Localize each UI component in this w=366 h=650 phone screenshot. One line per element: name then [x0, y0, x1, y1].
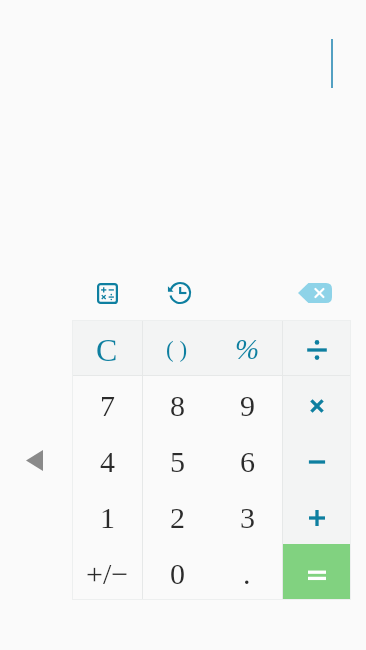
button[interactable]: 9	[212, 376, 282, 432]
staticText: .	[243, 557, 251, 590]
button[interactable]: 8	[142, 376, 212, 432]
button[interactable]: Operations	[72, 272, 142, 314]
button[interactable]: 2	[142, 488, 212, 544]
button[interactable]: Collapse keypad	[18, 442, 50, 478]
staticText: %	[235, 333, 260, 365]
staticText: 8	[170, 389, 185, 422]
staticText: ( )	[166, 337, 188, 362]
button[interactable]: C	[72, 320, 142, 376]
staticText: 2	[170, 501, 185, 534]
button[interactable]: 1	[72, 488, 142, 544]
staticText: +/−	[86, 557, 129, 590]
button[interactable]: Multiply	[282, 376, 351, 432]
button[interactable]: 3	[212, 488, 282, 544]
button[interactable]: 4	[72, 432, 142, 488]
button[interactable]: Subtract	[282, 432, 351, 488]
staticText: 6	[240, 445, 255, 478]
button[interactable]: History	[142, 272, 215, 314]
button[interactable]: Equals	[282, 544, 351, 600]
button[interactable]: 6	[212, 432, 282, 488]
staticText: 0	[170, 557, 185, 590]
staticText: 4	[100, 445, 115, 478]
button[interactable]: Add	[282, 488, 351, 544]
button[interactable]: .	[212, 544, 282, 600]
button[interactable]: 7	[72, 376, 142, 432]
button[interactable]: Backspace	[279, 272, 351, 314]
staticText: 5	[170, 445, 185, 478]
button[interactable]: Divide	[282, 320, 351, 376]
staticText: 7	[100, 389, 115, 422]
button[interactable]: 5	[142, 432, 212, 488]
staticText: 9	[240, 389, 255, 422]
staticText: 3	[240, 501, 255, 534]
staticText: 1	[100, 501, 115, 534]
button[interactable]: %	[212, 320, 282, 376]
button[interactable]: +/−	[72, 544, 142, 600]
staticText: C	[96, 332, 118, 367]
button[interactable]: 0	[142, 544, 212, 600]
button[interactable]: ( )	[142, 320, 212, 376]
